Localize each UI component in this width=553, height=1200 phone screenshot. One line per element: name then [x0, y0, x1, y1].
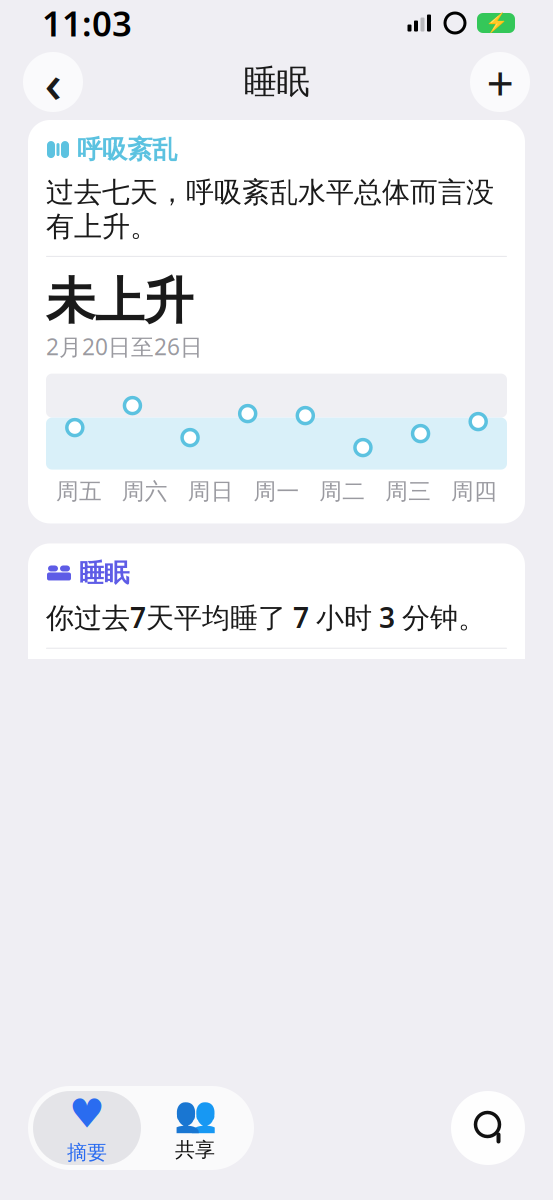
staticText: 周二 — [319, 478, 365, 505]
staticText: 摘要 — [67, 1140, 107, 1165]
staticText: 周一 — [253, 478, 299, 505]
staticText: 睡眠 — [243, 61, 309, 102]
staticText: 👥 — [173, 1094, 216, 1133]
button[interactable]: 👥 — [141, 1091, 249, 1165]
staticText: 16.5 — [231, 1114, 321, 1174]
button[interactable]: 呼吸紊乱 — [28, 120, 525, 523]
staticText: 11:03 — [42, 0, 132, 46]
staticText: 周日 — [188, 478, 234, 505]
staticText: 过去七天，呼吸紊乱水平总体而言没有上升。 — [46, 175, 494, 244]
button[interactable]: 返回 — [23, 47, 83, 117]
staticText: 睡眠 — [79, 557, 129, 588]
staticText: ‹ — [44, 47, 61, 117]
button[interactable]: 睡眠 — [28, 543, 525, 930]
button[interactable]: ♥ — [33, 1091, 141, 1165]
button[interactable]: 搜索 — [451, 1091, 525, 1165]
staticText: 你过去7天平均睡了 7 小时 3 分钟。 — [46, 599, 486, 636]
staticText: ♥ — [69, 1091, 105, 1136]
staticText: 共享 — [175, 1137, 215, 1162]
staticText: 周六 — [122, 478, 168, 505]
staticText: 2月20日至26日 — [46, 331, 203, 362]
staticText: ⚡ — [484, 12, 507, 34]
staticText: 周三 — [385, 478, 431, 505]
button[interactable]: 呼吸频率：睡眠 — [28, 950, 525, 1200]
staticText: 呼吸紊乱 — [77, 134, 177, 165]
staticText: + — [486, 50, 513, 114]
staticText: 周四 — [451, 478, 497, 505]
button[interactable]: 添加数据 — [470, 50, 530, 114]
staticText: 未上升 — [46, 271, 193, 331]
staticText: 周五 — [56, 478, 102, 505]
